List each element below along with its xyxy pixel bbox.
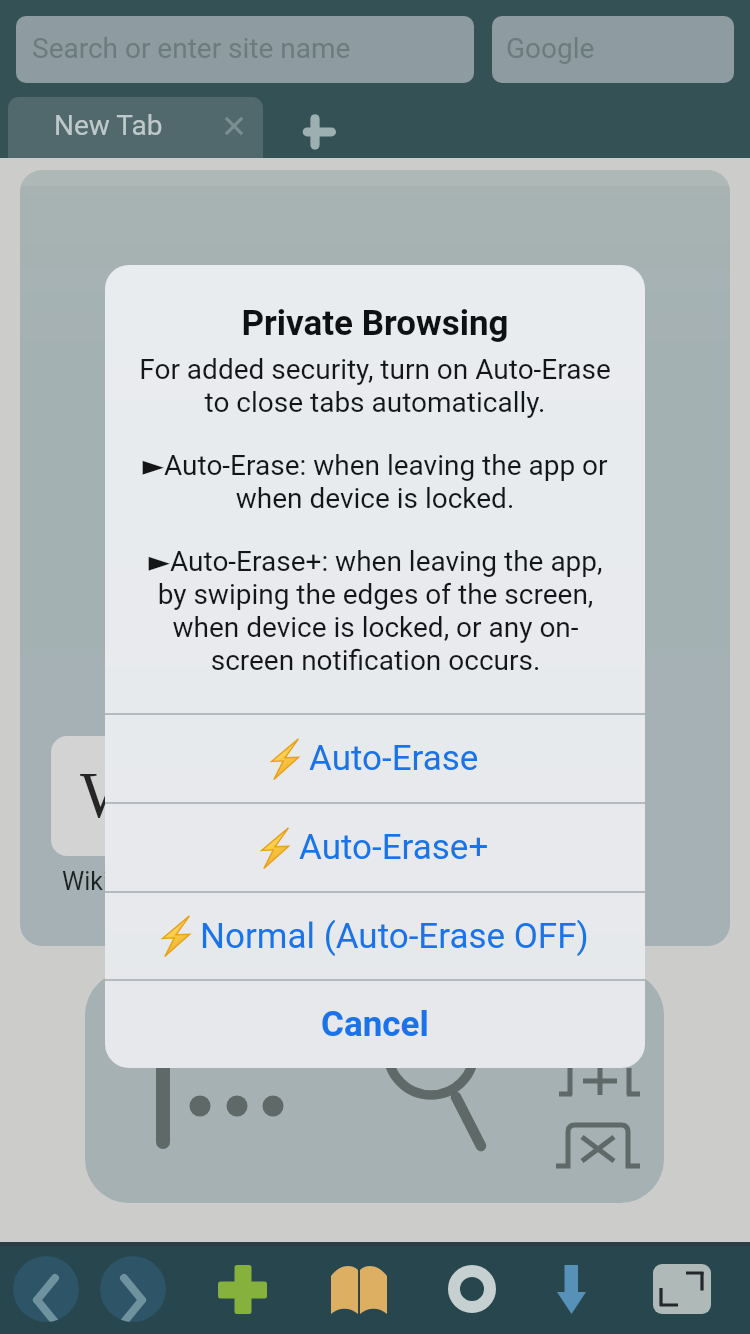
staticText: Normal (Auto-Erase OFF) <box>200 916 589 957</box>
staticText: Cancel <box>321 1004 429 1045</box>
staticText: Private Browsing <box>241 303 509 344</box>
button[interactable]: New Tab <box>8 97 263 158</box>
button[interactable]: Search or enter site name <box>16 16 474 83</box>
button[interactable]: New tab <box>213 1260 273 1320</box>
staticText: Google <box>506 32 595 65</box>
staticText: Search or enter site name <box>32 32 351 65</box>
button[interactable]: Forward <box>100 1256 166 1322</box>
staticText: ►Auto-Erase: when leaving the app or whe… <box>142 449 608 515</box>
staticText: W <box>80 758 143 831</box>
button[interactable]: Normal (Auto-Erase OFF) <box>105 893 645 979</box>
staticText: Auto-Erase <box>309 738 479 779</box>
staticText: ►Auto-Erase+: when leaving the app, by s… <box>148 545 603 677</box>
button[interactable]: Bookmarks <box>326 1260 392 1320</box>
button[interactable]: Stop <box>444 1261 500 1317</box>
button[interactable]: W <box>51 736 171 856</box>
button[interactable]: Google <box>492 16 734 83</box>
button[interactable]: Auto-Erase+ <box>105 804 645 891</box>
button[interactable]: Downloads <box>545 1260 597 1320</box>
staticText: Auto-Erase+ <box>299 827 489 868</box>
button[interactable]: Back <box>13 1256 79 1322</box>
button[interactable]: New tab <box>298 110 340 152</box>
staticText: New Tab <box>54 109 163 142</box>
staticText: For added security, turn on Auto-Erase t… <box>127 353 623 419</box>
button[interactable]: Close tab <box>219 111 249 141</box>
staticText: Wikipedia <box>62 867 171 896</box>
button[interactable]: Fullscreen <box>653 1264 711 1314</box>
button[interactable]: Auto-Erase <box>105 715 645 802</box>
button[interactable]: Cancel <box>105 981 645 1068</box>
